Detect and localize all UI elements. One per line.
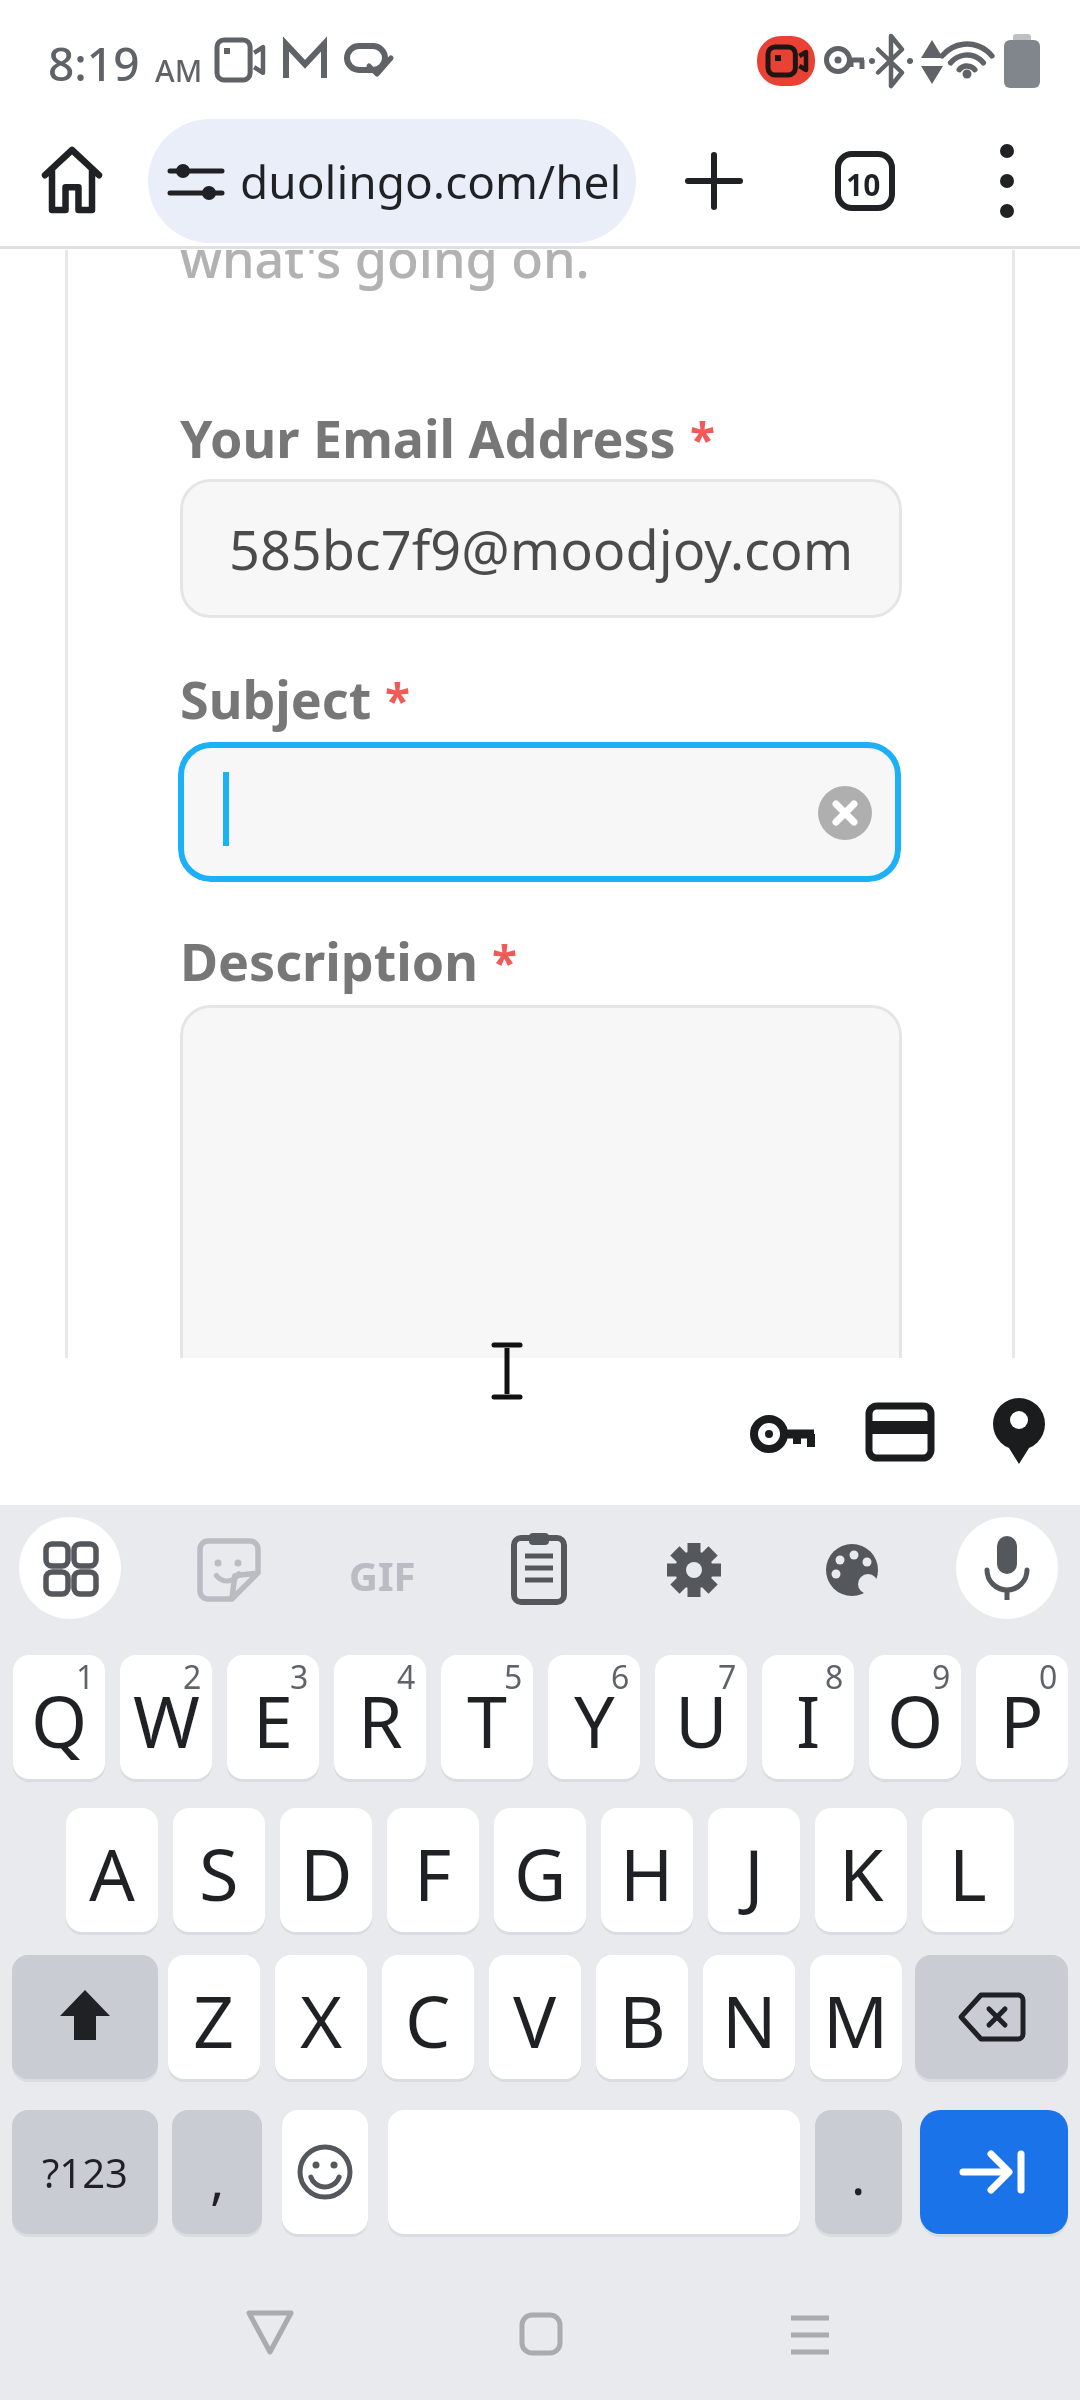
- staticText: 8:19: [48, 32, 140, 95]
- staticText: S: [199, 1824, 239, 1922]
- button[interactable]: R: [334, 1655, 426, 1779]
- button[interactable]: [19, 1517, 121, 1619]
- staticText: Description: [180, 925, 492, 996]
- staticText: P: [1000, 1671, 1044, 1769]
- staticText: 1: [76, 1655, 95, 1699]
- staticText: ,: [210, 2141, 225, 2215]
- staticText: G: [514, 1824, 567, 1922]
- button[interactable]: M: [810, 1955, 902, 2079]
- staticText: L: [949, 1824, 987, 1922]
- button[interactable]: N: [703, 1955, 795, 2079]
- button[interactable]: C: [382, 1955, 474, 2079]
- button[interactable]: Y: [548, 1655, 640, 1779]
- button[interactable]: G: [494, 1808, 586, 1932]
- button[interactable]: J: [708, 1808, 800, 1932]
- button[interactable]: H: [601, 1808, 693, 1932]
- button[interactable]: K: [815, 1808, 907, 1932]
- button[interactable]: [282, 2110, 368, 2234]
- staticText: 2: [183, 1655, 202, 1699]
- button[interactable]: I: [762, 1655, 854, 1779]
- button[interactable]: S: [173, 1808, 265, 1932]
- staticText: what's going on.: [180, 250, 590, 292]
- staticText: R: [358, 1671, 403, 1769]
- staticText: A: [89, 1824, 136, 1922]
- button[interactable]: Q: [13, 1655, 105, 1779]
- staticText: AM: [155, 50, 203, 91]
- staticText: N: [722, 1971, 777, 2069]
- button[interactable]: [180, 1005, 902, 1358]
- staticText: 7: [718, 1655, 737, 1699]
- button[interactable]: E: [227, 1655, 319, 1779]
- staticText: K: [839, 1824, 884, 1922]
- button[interactable]: [956, 1517, 1058, 1619]
- staticText: .: [851, 2137, 866, 2211]
- staticText: E: [253, 1671, 294, 1769]
- staticText: D: [300, 1824, 353, 1922]
- button[interactable]: ?123: [12, 2110, 158, 2234]
- staticText: T: [467, 1671, 508, 1769]
- staticText: 0: [1039, 1655, 1058, 1699]
- button[interactable]: Z: [168, 1955, 260, 2079]
- button[interactable]: [920, 2110, 1068, 2234]
- staticText: W: [133, 1671, 200, 1769]
- button[interactable]: [12, 1955, 158, 2079]
- button[interactable]: 585bc7f9@moodjoy.com: [180, 479, 902, 618]
- button[interactable]: V: [489, 1955, 581, 2079]
- staticText: Q: [31, 1671, 88, 1769]
- staticText: ?123: [42, 2145, 128, 2199]
- staticText: Subject: [180, 663, 385, 734]
- staticText: 3: [290, 1655, 309, 1699]
- staticText: I: [796, 1671, 821, 1769]
- button[interactable]: [915, 1955, 1068, 2079]
- staticText: *: [385, 669, 410, 732]
- staticText: O: [887, 1671, 944, 1769]
- staticText: Z: [193, 1971, 235, 2069]
- button[interactable]: duolingo.com/hel: [148, 119, 636, 243]
- staticText: H: [620, 1824, 674, 1922]
- button[interactable]: [220, 2300, 320, 2370]
- button[interactable]: F: [387, 1808, 479, 1932]
- button[interactable]: .: [815, 2110, 902, 2234]
- button[interactable]: B: [596, 1955, 688, 2079]
- staticText: B: [619, 1971, 666, 2069]
- button[interactable]: O: [869, 1655, 961, 1779]
- staticText: *: [690, 408, 715, 471]
- button[interactable]: [178, 742, 901, 882]
- staticText: M: [823, 1971, 889, 2069]
- staticText: X: [300, 1971, 343, 2069]
- staticText: 10: [846, 164, 881, 205]
- staticText: GIF: [349, 1548, 416, 1602]
- button[interactable]: T: [441, 1655, 533, 1779]
- staticText: duolingo.com/hel: [240, 150, 622, 213]
- staticText: 6: [611, 1655, 630, 1699]
- button[interactable]: ,: [172, 2110, 262, 2234]
- button[interactable]: A: [66, 1808, 158, 1932]
- staticText: *: [492, 931, 517, 994]
- staticText: 5: [504, 1655, 523, 1699]
- button[interactable]: [490, 2300, 590, 2370]
- button[interactable]: U: [655, 1655, 747, 1779]
- button[interactable]: D: [280, 1808, 372, 1932]
- staticText: C: [405, 1971, 451, 2069]
- button[interactable]: X: [275, 1955, 367, 2079]
- staticText: Y: [574, 1671, 615, 1769]
- button[interactable]: W: [120, 1655, 212, 1779]
- staticText: F: [414, 1824, 452, 1922]
- staticText: 9: [932, 1655, 951, 1699]
- staticText: U: [675, 1671, 728, 1769]
- staticText: V: [513, 1971, 557, 2069]
- staticText: 4: [397, 1655, 416, 1699]
- staticText: 8: [825, 1655, 844, 1699]
- staticText: 585bc7f9@moodjoy.com: [229, 512, 854, 586]
- button[interactable]: L: [922, 1808, 1014, 1932]
- staticText: J: [744, 1824, 764, 1922]
- button[interactable]: [760, 2300, 860, 2370]
- staticText: Your Email Address: [180, 402, 690, 473]
- button[interactable]: P: [976, 1655, 1068, 1779]
